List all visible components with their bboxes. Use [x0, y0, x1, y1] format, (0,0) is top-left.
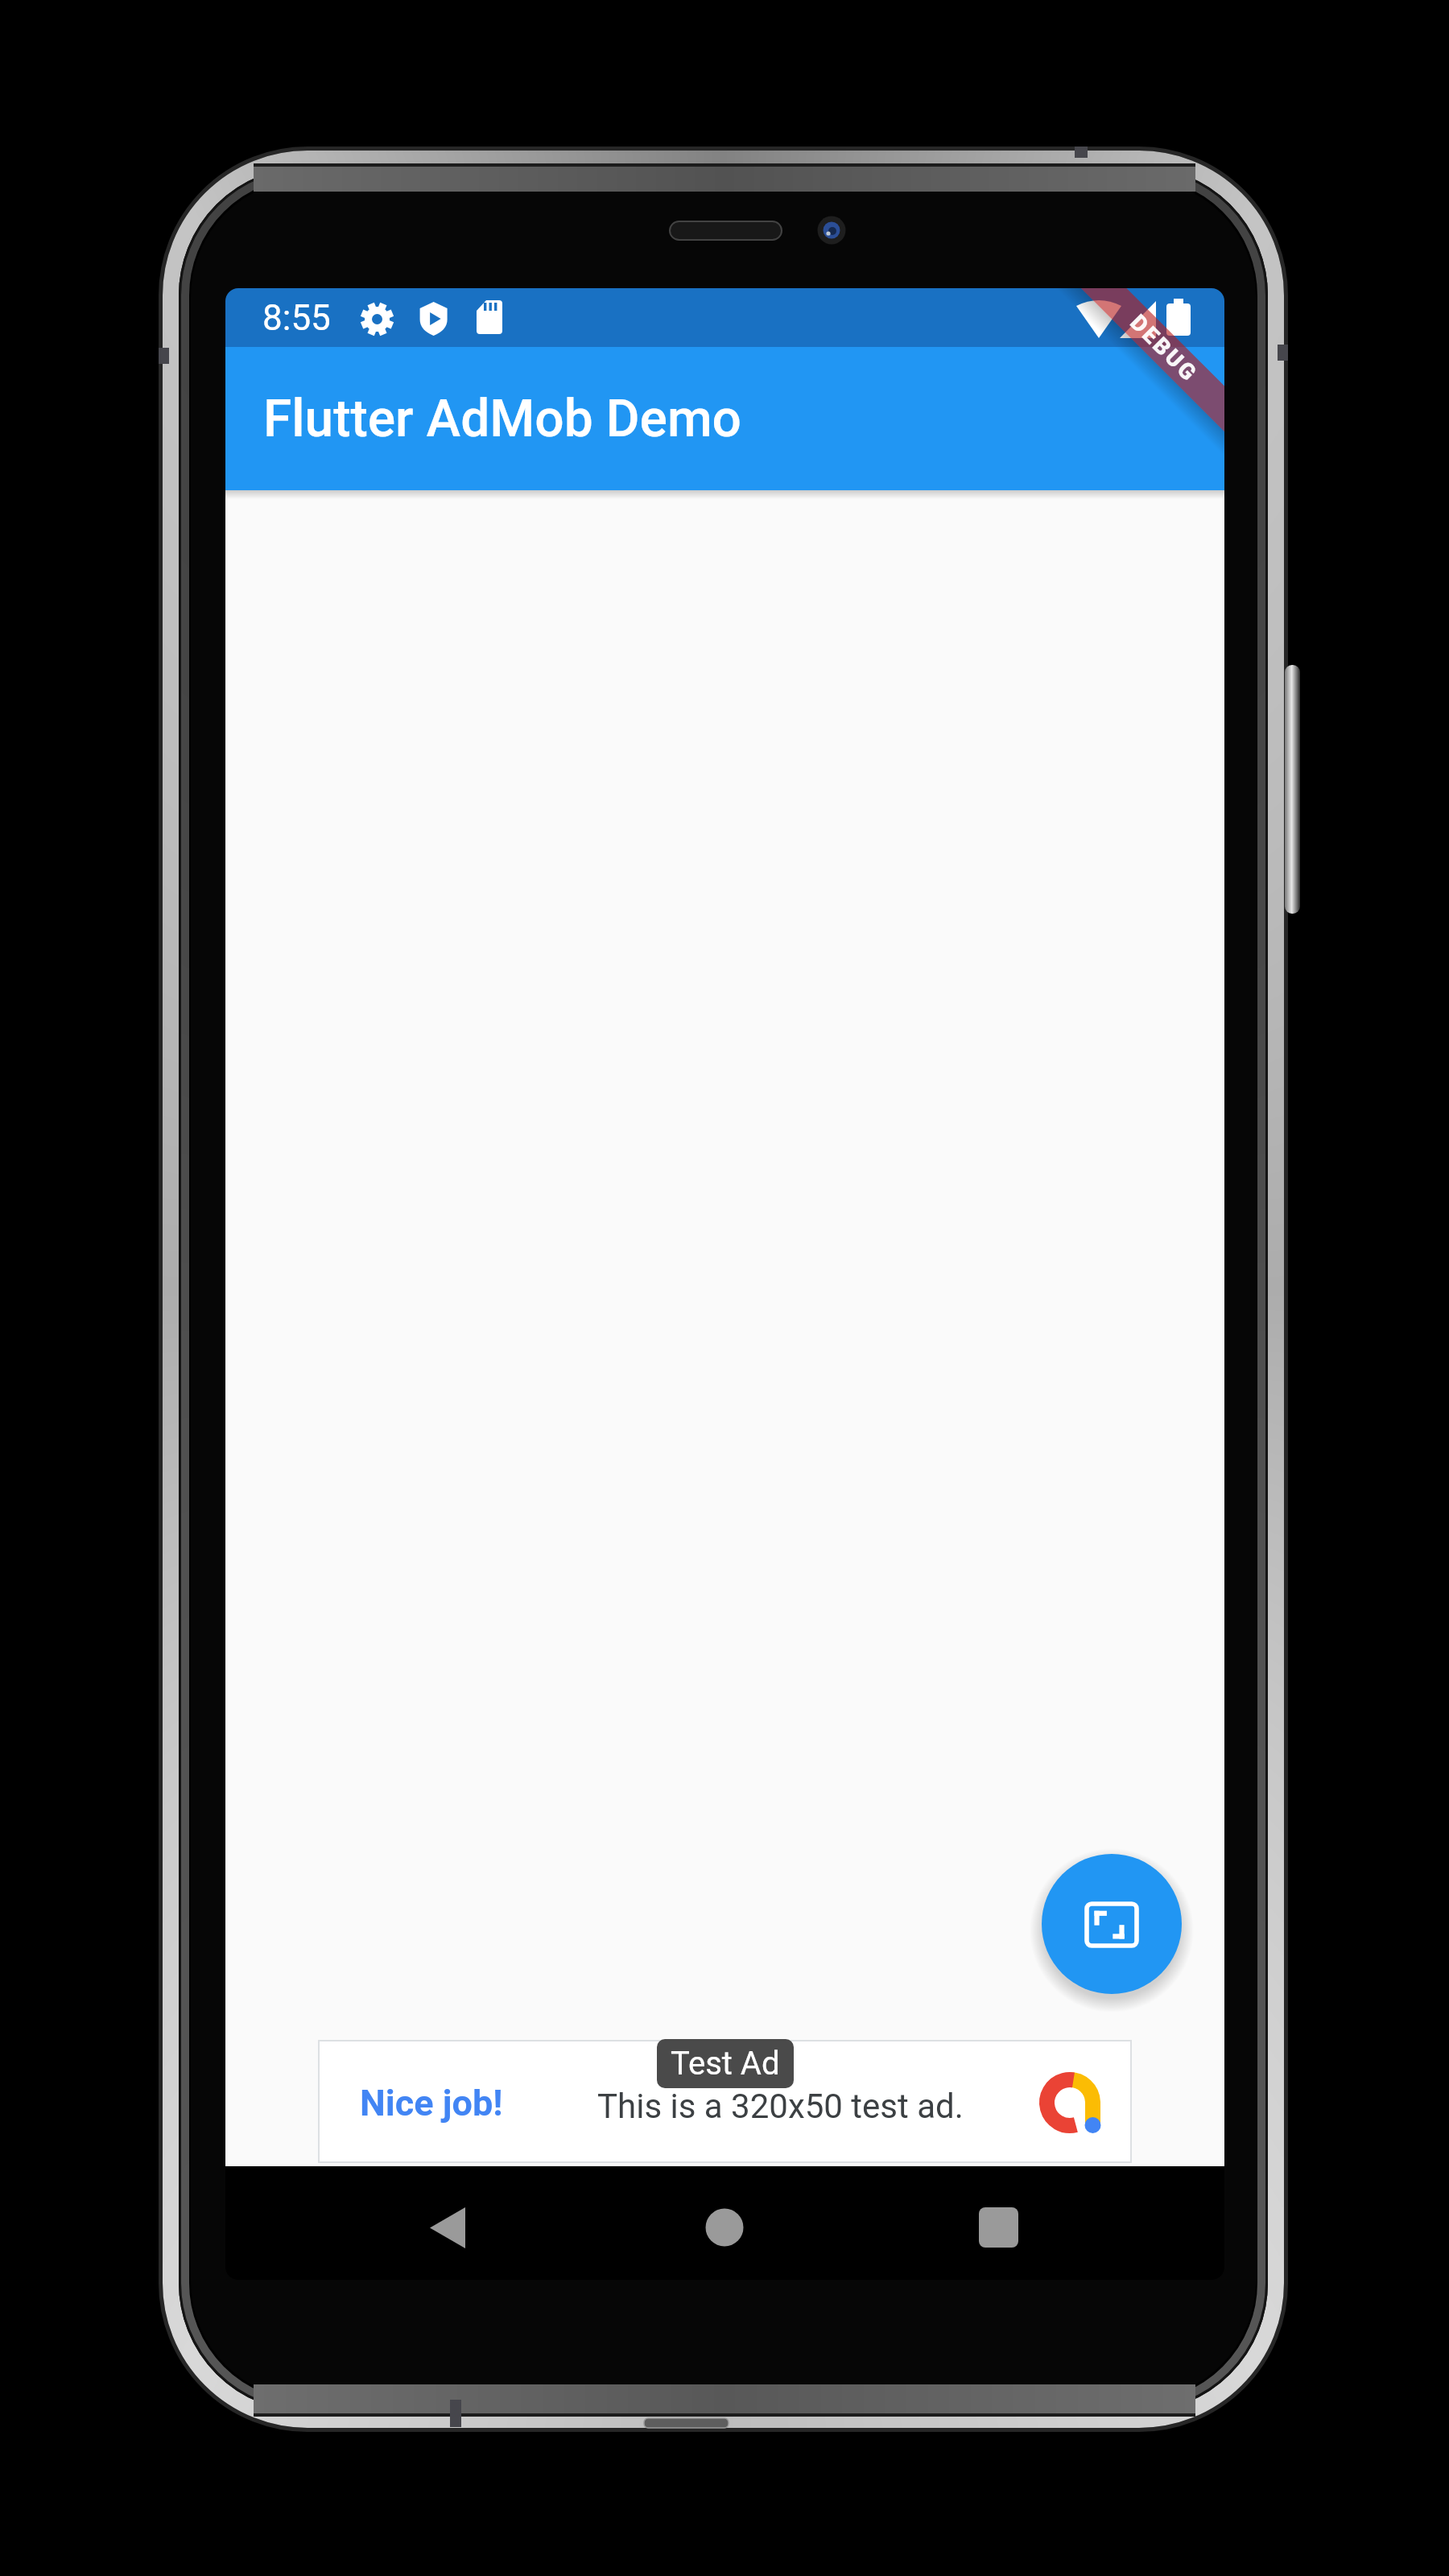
button[interactable] — [414, 2199, 481, 2256]
staticText: 8:55 — [262, 297, 331, 339]
staticText: Nice job! — [360, 2082, 503, 2124]
button[interactable]: Nice job! — [319, 2041, 1131, 2162]
staticText: Flutter AdMob Demo — [263, 389, 742, 449]
button[interactable] — [964, 2199, 1032, 2256]
button[interactable] — [1042, 1854, 1182, 1994]
staticText: Test Ad — [671, 2045, 780, 2083]
button[interactable] — [691, 2199, 758, 2256]
staticText: This is a 320x50 test ad. — [597, 2087, 964, 2126]
